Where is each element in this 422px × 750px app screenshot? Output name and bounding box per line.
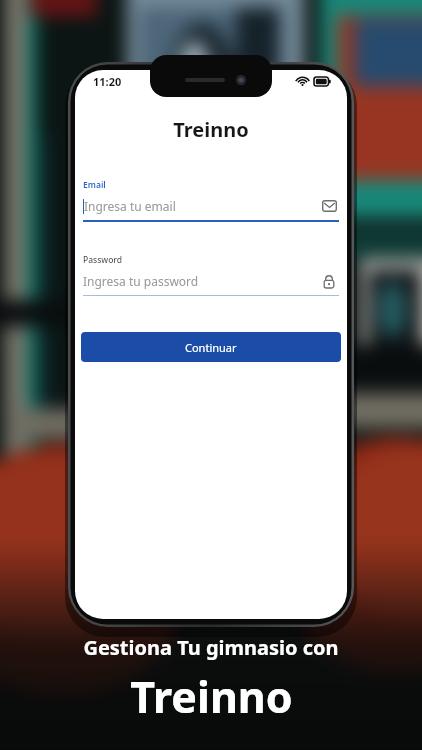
staticText: Password: [83, 254, 123, 266]
button[interactable]: Email: [81, 179, 341, 222]
staticText: Gestiona Tu gimnasio con: [0, 634, 422, 661]
staticText: Treinno: [130, 667, 293, 726]
button[interactable]: Email: [319, 196, 339, 216]
button[interactable]: Password: [81, 254, 341, 296]
staticText: Email: [83, 179, 106, 191]
staticText: Continuar: [185, 340, 237, 355]
staticText: Ingresa tu email: [84, 198, 319, 214]
staticText: Treinno: [75, 116, 347, 143]
button[interactable]: Password: [319, 271, 339, 291]
staticText: 11:20: [93, 74, 122, 89]
staticText: Treinno: [130, 667, 293, 726]
button[interactable]: Continuar: [81, 332, 341, 362]
staticText: Ingresa tu password: [83, 273, 319, 289]
